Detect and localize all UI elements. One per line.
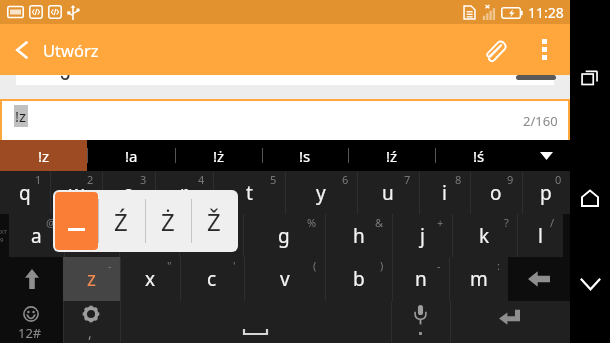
button[interactable]: Enter xyxy=(450,301,570,343)
staticText: 12# xyxy=(18,324,42,342)
button[interactable]: h xyxy=(325,214,392,257)
staticText: @ xyxy=(46,215,56,230)
staticText: ? xyxy=(504,215,509,230)
staticText: % xyxy=(307,215,317,230)
button[interactable]: a xyxy=(9,214,64,257)
button[interactable]: g xyxy=(243,214,325,257)
button[interactable]: Back xyxy=(0,24,43,75)
staticText: 2/160 xyxy=(523,112,558,130)
button[interactable]: z xyxy=(63,257,120,301)
staticText: c xyxy=(207,266,217,292)
staticText: p xyxy=(540,180,552,206)
button[interactable]: p xyxy=(522,171,570,214)
button[interactable]: !z xyxy=(2,101,568,140)
button[interactable]: r xyxy=(155,171,213,214)
staticText: !ź xyxy=(386,146,398,166)
button[interactable]: v xyxy=(244,257,325,301)
button[interactable]: d xyxy=(119,214,179,257)
staticText: 2 xyxy=(87,172,94,187)
staticText: q xyxy=(19,180,31,206)
button[interactable]: t xyxy=(213,171,285,214)
staticText: e xyxy=(123,180,134,206)
staticText: !ś xyxy=(473,146,485,166)
staticText: ) xyxy=(380,258,384,273)
button[interactable]: q xyxy=(0,171,50,214)
staticText: / xyxy=(550,215,555,230)
button[interactable]: More options xyxy=(523,24,570,75)
button[interactable]: i xyxy=(419,171,470,214)
staticText: h xyxy=(353,223,365,249)
staticText: w xyxy=(69,180,84,206)
staticText: !z xyxy=(38,146,50,166)
button[interactable]: Voice input xyxy=(391,301,450,343)
staticText: Utwórz xyxy=(43,39,99,61)
staticText: x xyxy=(145,266,156,292)
button[interactable]: Shift xyxy=(0,257,63,301)
staticText: $ xyxy=(164,215,171,230)
button[interactable]: w xyxy=(50,171,102,214)
staticText: l xyxy=(538,223,543,249)
button[interactable]: Attach xyxy=(467,24,523,75)
button[interactable]: x xyxy=(120,257,180,301)
staticText: b xyxy=(353,266,365,292)
button[interactable]: !ż xyxy=(175,140,262,171)
staticText: 3 xyxy=(140,172,147,187)
staticText: 0 xyxy=(555,172,562,187)
staticText: Ž xyxy=(207,205,221,238)
button[interactable]: s xyxy=(64,214,119,257)
button[interactable]: Backspace xyxy=(508,257,570,301)
staticText: m xyxy=(470,266,488,292)
staticText: 5 xyxy=(270,172,277,187)
button[interactable]: k xyxy=(452,214,517,257)
staticText: y xyxy=(316,180,326,206)
button[interactable]: b xyxy=(325,257,392,301)
button[interactable]: y xyxy=(285,171,357,214)
staticText: !z xyxy=(15,106,27,126)
staticText: a xyxy=(31,223,42,249)
staticText: + xyxy=(437,215,444,230)
button[interactable]: Back xyxy=(570,264,610,304)
staticText: 4 xyxy=(198,172,205,187)
staticText: !s xyxy=(299,146,311,166)
staticText: j xyxy=(420,223,425,249)
button[interactable]: Ż xyxy=(145,190,191,252)
button[interactable]: Dash xyxy=(55,192,98,250)
button[interactable]: !a xyxy=(87,140,175,171)
button[interactable]: m xyxy=(449,257,508,301)
button[interactable]: More suggestions xyxy=(522,140,570,171)
staticText: 9 xyxy=(507,172,514,187)
staticText: ( xyxy=(313,258,317,273)
button[interactable]: Keyboard settings xyxy=(63,301,120,343)
staticText: !a xyxy=(125,146,138,166)
button[interactable]: f xyxy=(179,214,243,257)
staticText: 1 xyxy=(35,172,42,187)
staticText: Ź xyxy=(114,205,128,238)
button[interactable]: Recents xyxy=(570,58,610,98)
staticText: d xyxy=(143,223,155,249)
button[interactable]: e xyxy=(102,171,155,214)
button[interactable]: j xyxy=(392,214,452,257)
button[interactable]: !ź xyxy=(348,140,435,171)
button[interactable]: Home xyxy=(570,178,610,218)
button[interactable]: n xyxy=(392,257,449,301)
staticText: - xyxy=(437,258,441,273)
button[interactable]: Emoji and symbols xyxy=(0,301,63,343)
staticText: , xyxy=(88,323,92,342)
button[interactable]: !s xyxy=(262,140,348,171)
staticText: & xyxy=(375,215,384,230)
staticText: i xyxy=(442,180,447,206)
staticText: 11:28 xyxy=(528,3,564,22)
button[interactable]: l xyxy=(517,214,563,257)
button[interactable]: Ž xyxy=(191,190,237,252)
button[interactable]: Ź xyxy=(98,190,144,252)
button[interactable]: Space xyxy=(120,301,391,343)
staticText: 7 xyxy=(404,172,411,187)
button[interactable]: u xyxy=(357,171,419,214)
button[interactable]: !ś xyxy=(435,140,522,171)
button[interactable]: !z xyxy=(0,140,87,171)
staticText: 8 xyxy=(455,172,462,187)
button[interactable]: o xyxy=(470,171,522,214)
button[interactable]: c xyxy=(180,257,244,301)
